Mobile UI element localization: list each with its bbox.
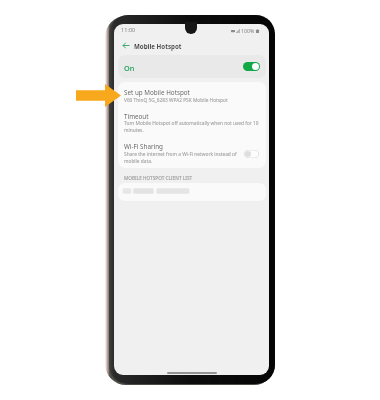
staticText: Mobile Hotspot: [134, 42, 182, 50]
button[interactable]: Wi-Fi Sharing off: [244, 150, 259, 158]
button[interactable]: On: [118, 55, 266, 78]
staticText: V60 ThinQ 5G_6283 WPA2 PSK Mobile Hotspo…: [124, 97, 262, 104]
staticText: Turn Mobile Hotspot off automatically wh…: [124, 120, 262, 134]
staticText: MOBILE HOTSPOT CLIENT LIST: [124, 175, 193, 181]
staticText: 11:00: [121, 26, 136, 34]
staticText: Timeout: [124, 112, 262, 121]
staticText: 100%: [241, 27, 255, 34]
button[interactable]: [118, 106, 266, 137]
staticText: Wi-Fi Sharing: [124, 142, 262, 151]
button[interactable]: Back: [119, 37, 133, 54]
staticText: Set up Mobile Hotspot: [124, 88, 262, 97]
button[interactable]: [118, 82, 266, 106]
staticText: Share the internet from a Wi-Fi network …: [124, 151, 242, 165]
button[interactable]: Mobile Hotspot on: [243, 62, 260, 71]
button[interactable]: [118, 137, 266, 168]
button[interactable]: [118, 183, 266, 201]
staticText: On: [124, 63, 135, 73]
